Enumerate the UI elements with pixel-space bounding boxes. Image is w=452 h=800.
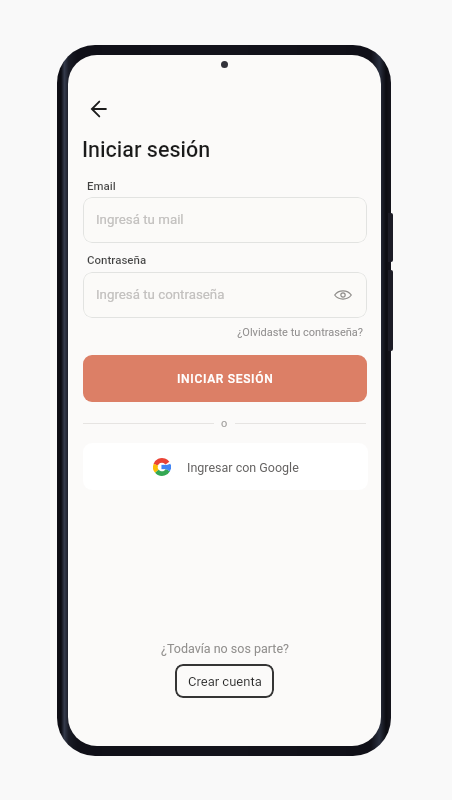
staticText: o <box>221 417 228 430</box>
button[interactable]: Ingresá tu mail <box>83 197 367 243</box>
staticText: ¿Olvidaste tu contraseña? <box>237 326 363 339</box>
button[interactable]: ¿Olvidaste tu contraseña? <box>83 323 363 341</box>
button[interactable]: INICIAR SESIÓN <box>83 355 367 402</box>
button[interactable]: Crear cuenta <box>175 664 274 698</box>
staticText: Email <box>87 179 116 192</box>
button[interactable]: Back <box>85 95 113 123</box>
button[interactable]: Ingresar con Google <box>83 443 368 490</box>
staticText: ¿Todavía no sos parte? <box>161 641 289 656</box>
staticText: Contraseña <box>87 253 147 266</box>
staticText: INICIAR SESIÓN <box>177 372 274 386</box>
staticText: Iniciar sesión <box>82 137 211 162</box>
staticText: Ingresá tu mail <box>96 212 184 228</box>
staticText: Ingresá tu contraseña <box>96 287 225 303</box>
button[interactable]: Show password <box>330 282 356 308</box>
staticText: Crear cuenta <box>188 674 262 689</box>
staticText: Ingresar con Google <box>187 460 299 475</box>
button[interactable]: Ingresá tu contraseña <box>83 272 367 318</box>
